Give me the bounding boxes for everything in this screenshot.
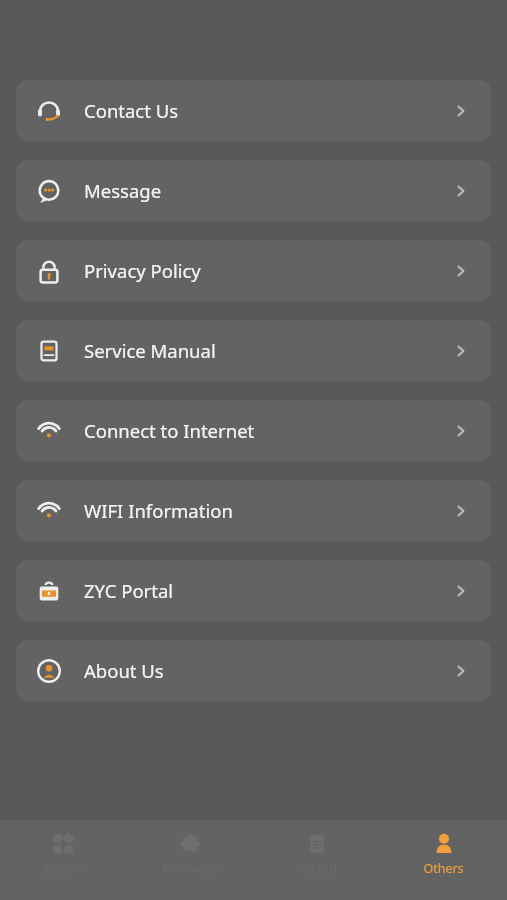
button[interactable]: Others [380,826,507,883]
staticText: Others [423,860,464,877]
button[interactable]: Contact Us [16,80,491,141]
button[interactable]: Privacy Policy [16,240,491,301]
button[interactable]: ZYC Portal [16,560,491,621]
staticText: Service Manual [84,338,216,363]
staticText: Connect to Internet [84,418,255,443]
staticText: About Us [84,658,164,683]
staticText: Message [84,178,162,203]
button[interactable]: Connect to Internet [16,400,491,461]
button[interactable]: WIFI Information [16,480,491,541]
staticText: Contact Us [84,98,179,123]
staticText: Privacy Policy [84,258,201,283]
staticText: WIFI Information [84,498,233,523]
button[interactable]: Message [16,160,491,221]
button[interactable]: Service Manual [16,320,491,381]
button[interactable]: About Us [16,640,491,701]
staticText: ZYC Portal [84,578,174,603]
